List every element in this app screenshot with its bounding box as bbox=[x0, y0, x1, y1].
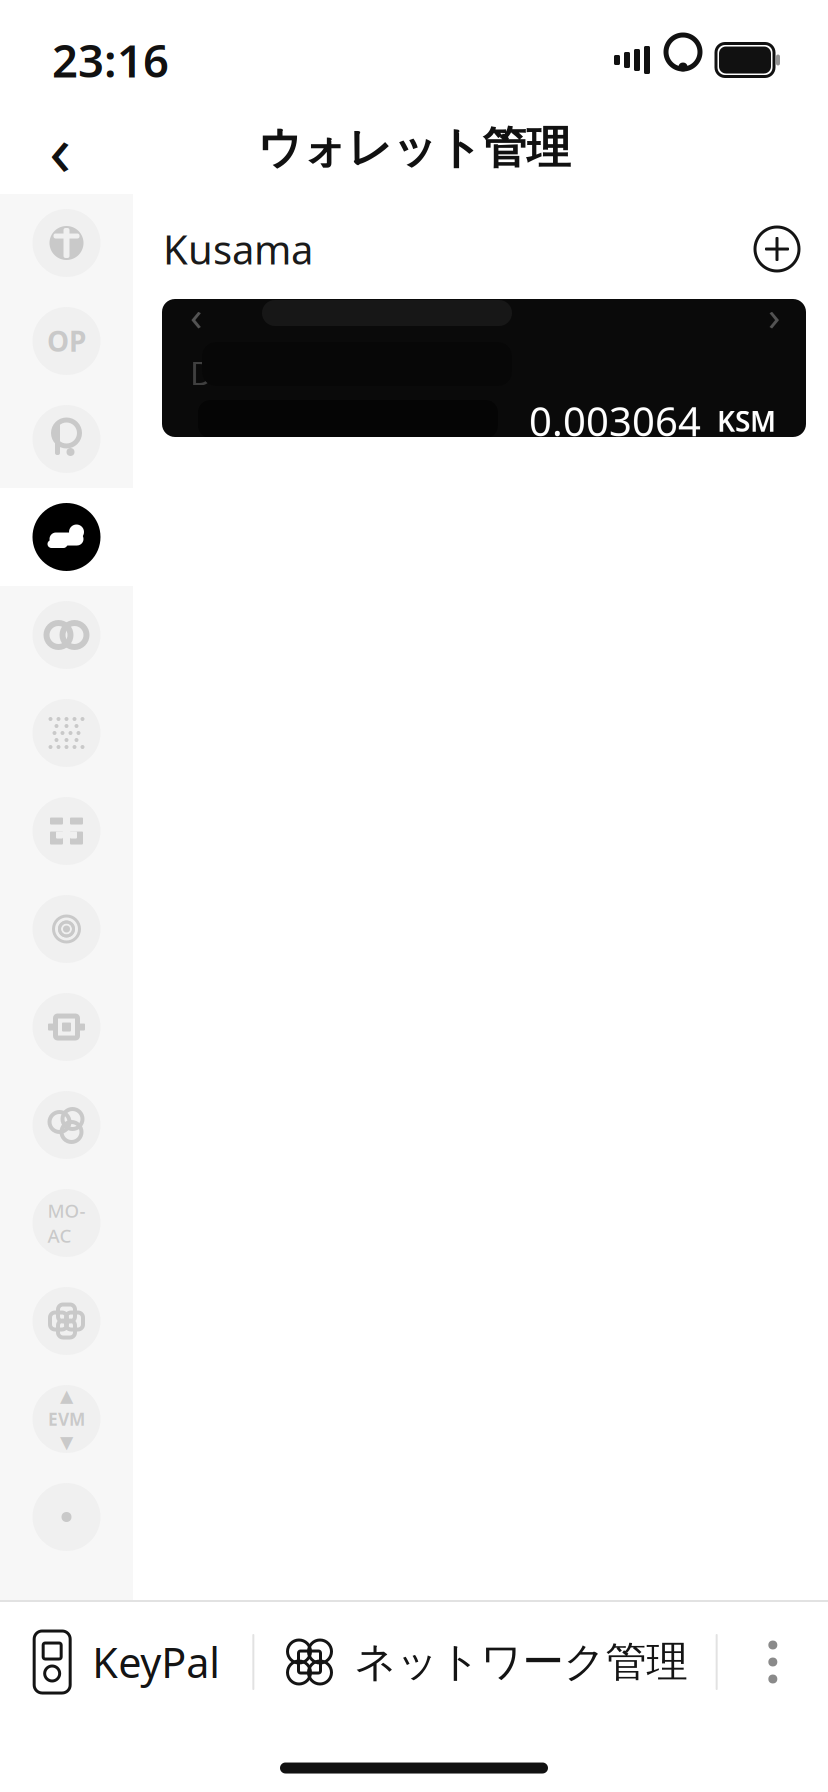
button[interactable]: Network 11 bbox=[0, 1272, 133, 1370]
staticText: Kusama bbox=[163, 222, 313, 275]
button[interactable]: Network 7 bbox=[0, 880, 133, 978]
button[interactable]: Add wallet bbox=[748, 220, 806, 278]
staticText: MOAC bbox=[47, 1198, 85, 1248]
button[interactable]: Network 8 bbox=[0, 978, 133, 1076]
button[interactable]: Network 9 bbox=[0, 1076, 133, 1174]
button[interactable]: Network 12 bbox=[0, 1370, 133, 1468]
staticText: 23:16 bbox=[52, 30, 169, 90]
staticText: EVM bbox=[48, 1407, 85, 1430]
button[interactable]: Network 1 bbox=[0, 292, 133, 390]
staticText: › bbox=[768, 289, 780, 342]
staticText: OP bbox=[47, 322, 86, 360]
staticText: KeyPal bbox=[92, 1635, 220, 1689]
button[interactable]: Network 5 bbox=[0, 684, 133, 782]
button[interactable]: More options bbox=[734, 1614, 812, 1710]
button[interactable]: Network 10 bbox=[0, 1174, 133, 1272]
staticText: ネットワーク管理 bbox=[354, 1637, 687, 1687]
staticText: D bbox=[190, 352, 213, 394]
staticText: KSM bbox=[717, 402, 776, 439]
button[interactable]: Network 3 bbox=[0, 488, 133, 586]
staticText: ‹ bbox=[49, 100, 71, 196]
staticText: ▲ bbox=[60, 1386, 73, 1405]
button[interactable]: Back bbox=[18, 106, 102, 190]
staticText: ‹ bbox=[190, 289, 202, 342]
button[interactable]: Network 13 bbox=[0, 1468, 133, 1566]
button[interactable]: Network 4 bbox=[0, 586, 133, 684]
staticText: ▼ bbox=[60, 1432, 73, 1452]
button[interactable]: Network 2 bbox=[0, 390, 133, 488]
button[interactable]: ネットワーク管理 bbox=[270, 1614, 699, 1710]
button[interactable]: Network 6 bbox=[0, 782, 133, 880]
staticText: ウォレット管理 bbox=[257, 121, 570, 175]
button[interactable]: Network 0 bbox=[0, 194, 133, 292]
button[interactable]: KeyPal bbox=[16, 1614, 236, 1710]
button[interactable]: Kusama account, balance 0.003064 KSM bbox=[162, 299, 806, 437]
staticText: 0.003064 bbox=[529, 394, 701, 447]
